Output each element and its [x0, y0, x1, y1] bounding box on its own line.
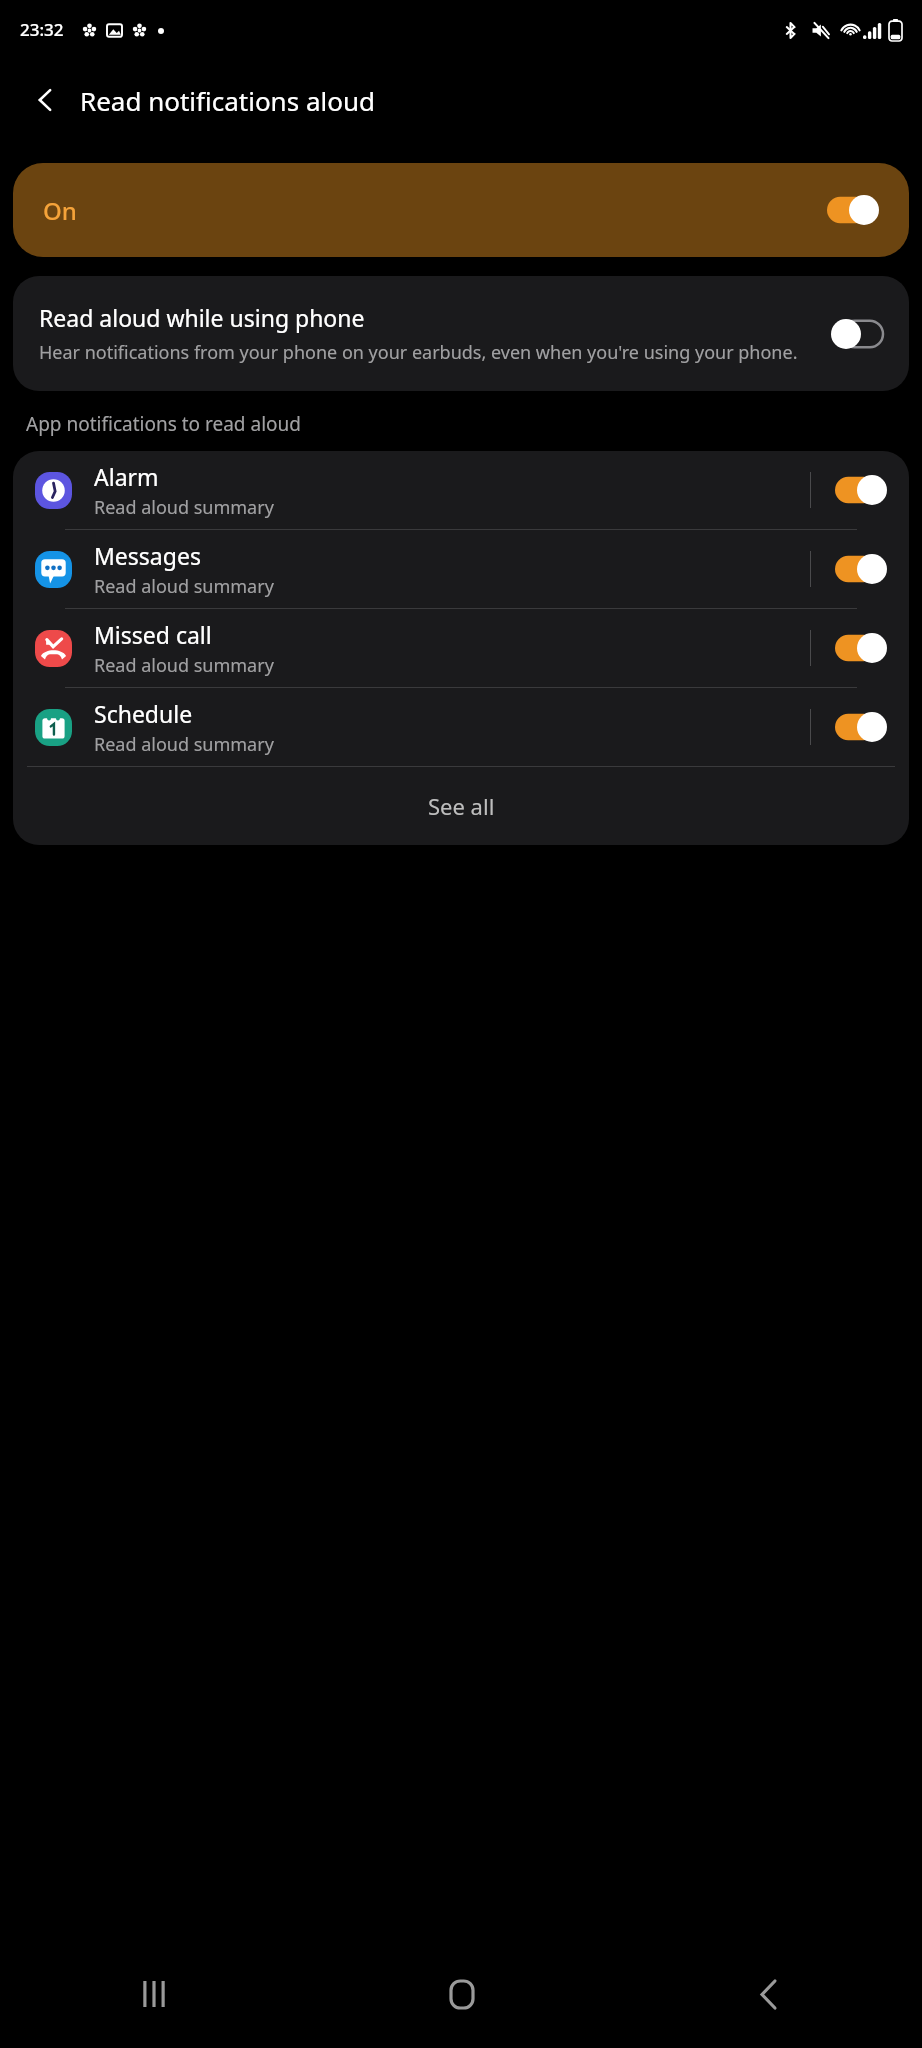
button[interactable]: Home [308, 1940, 615, 2048]
staticText: Alarm [94, 461, 159, 492]
staticText: Missed call [94, 619, 212, 650]
button[interactable]: Missed call [13, 609, 909, 687]
staticText: Read aloud while using phone [39, 302, 365, 333]
staticText: Read notifications aloud [80, 83, 375, 118]
button[interactable]: Missed call toggle [835, 633, 887, 663]
staticText: Messages [94, 540, 201, 571]
button[interactable]: Schedule toggle [835, 712, 887, 742]
button[interactable]: Back [18, 72, 74, 128]
staticText: Hear notifications from your phone on yo… [39, 340, 798, 365]
button[interactable]: On [13, 163, 909, 257]
staticText: On [43, 194, 77, 227]
button[interactable]: Messages toggle [835, 554, 887, 584]
staticText: Read aloud summary [94, 732, 274, 757]
staticText: 23:32 [20, 18, 64, 41]
staticText: Read aloud summary [94, 495, 274, 520]
button[interactable]: Alarm toggle [835, 475, 887, 505]
staticText: Schedule [94, 698, 193, 729]
button[interactable]: Schedule [13, 688, 909, 766]
button[interactable]: Messages [13, 530, 909, 608]
button[interactable]: Alarm [13, 451, 909, 529]
staticText: Read aloud summary [94, 653, 274, 678]
staticText: See all [428, 791, 495, 821]
staticText: Read aloud summary [94, 574, 274, 599]
staticText: App notifications to read aloud [26, 411, 301, 437]
button[interactable]: Back [615, 1940, 922, 2048]
button[interactable]: Read aloud while using phone [13, 276, 909, 391]
button[interactable]: Recents [0, 1940, 308, 2048]
button[interactable]: See all [13, 767, 909, 845]
